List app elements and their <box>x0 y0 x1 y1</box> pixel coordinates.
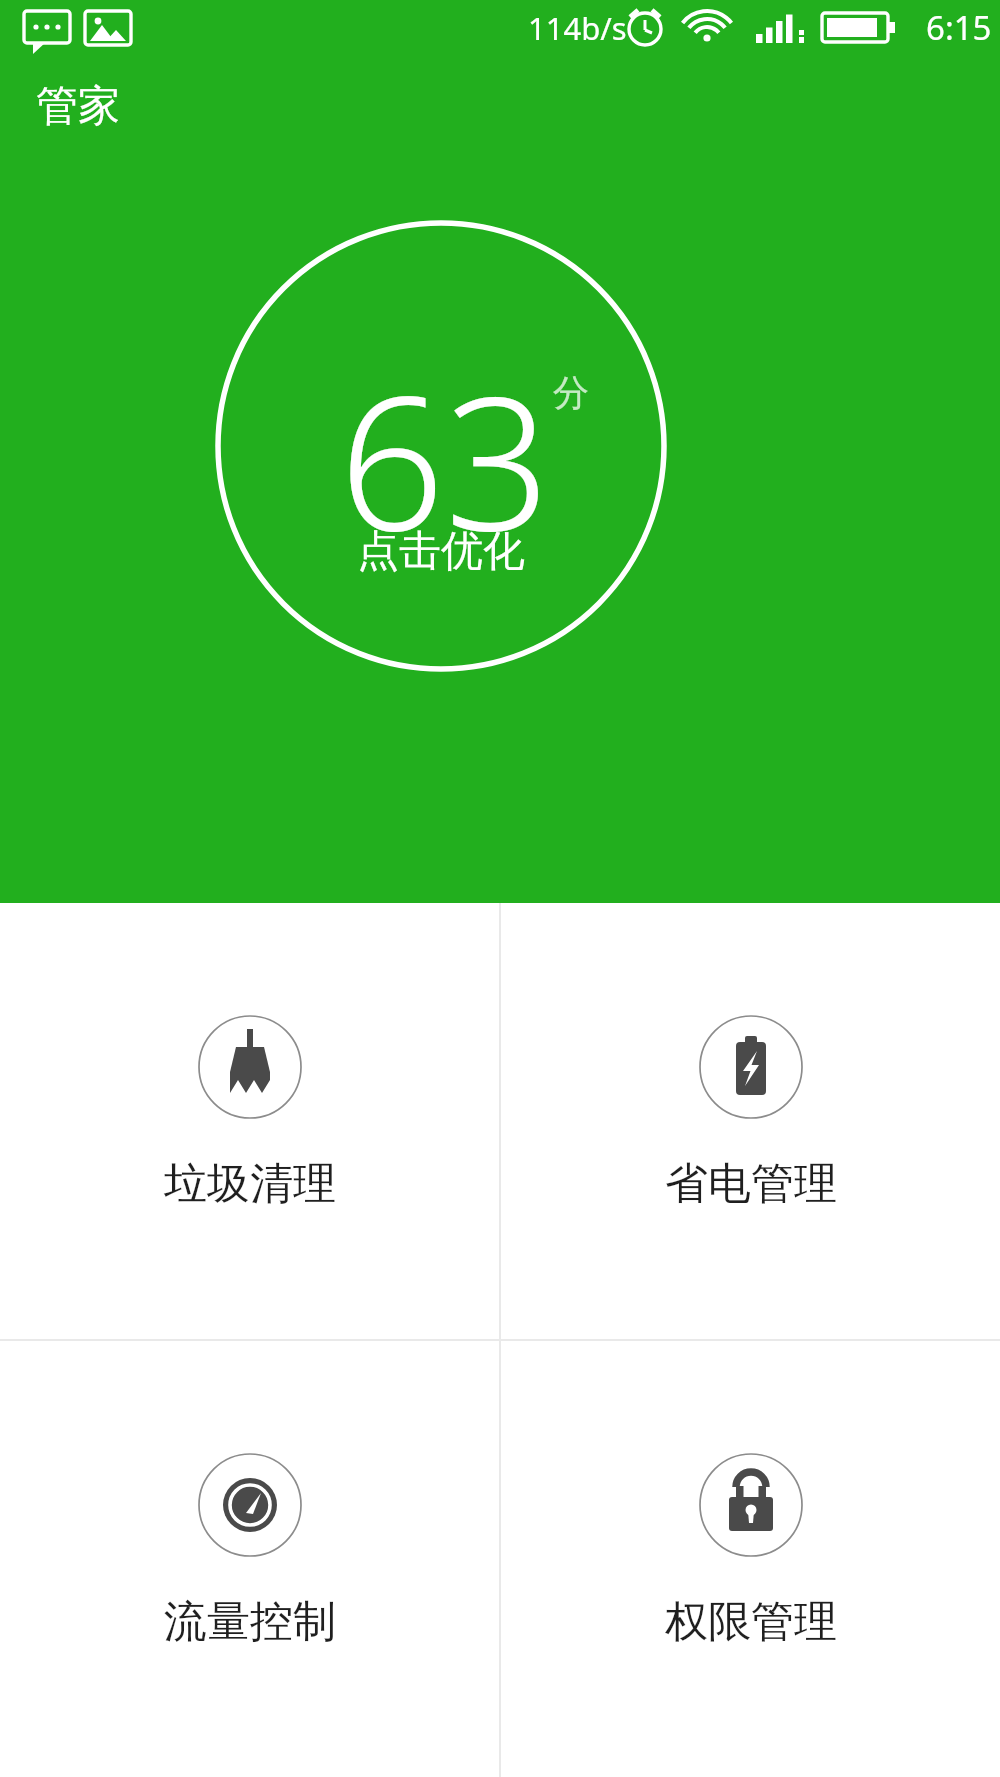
button[interactable]: 权限管理 <box>501 1341 1000 1777</box>
staticText: 管家 <box>36 80 120 133</box>
button[interactable]: 垃圾清理 <box>0 903 499 1339</box>
button[interactable]: 点击优化 <box>215 220 667 672</box>
button[interactable]: 省电管理 <box>501 903 1000 1339</box>
staticText: 省电管理 <box>665 1157 837 1211</box>
staticText: 流量控制 <box>164 1595 336 1649</box>
staticText: 63 <box>339 332 551 584</box>
staticText: 权限管理 <box>665 1595 837 1649</box>
staticText: 114b/s <box>528 7 627 49</box>
staticText: 6:15 <box>926 5 992 50</box>
staticText: 分 <box>553 370 589 415</box>
button[interactable]: 流量控制 <box>0 1341 499 1777</box>
staticText: 点击优化 <box>357 525 525 578</box>
staticText: 垃圾清理 <box>164 1157 336 1211</box>
